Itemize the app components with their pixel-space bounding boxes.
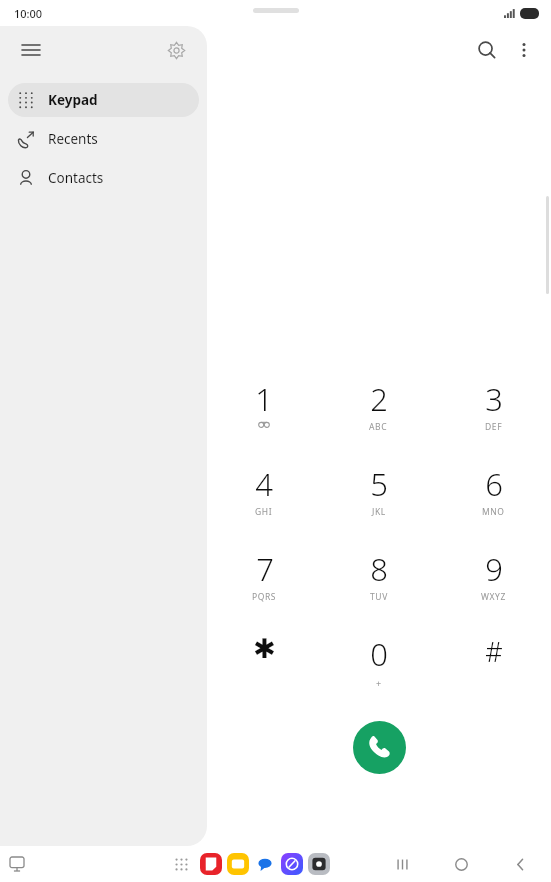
staticText: 9 — [485, 548, 503, 590]
button[interactable]: Apps — [168, 851, 194, 877]
staticText: 3 — [485, 378, 503, 420]
button[interactable]: App — [281, 853, 303, 875]
button[interactable]: Contacts — [8, 161, 199, 195]
staticText: Keypad — [48, 91, 98, 109]
staticText: JKL — [372, 506, 386, 518]
button[interactable]: More options — [507, 33, 541, 67]
staticText: 8 — [370, 548, 388, 590]
button[interactable]: App — [254, 853, 276, 875]
staticText: GHI — [255, 506, 273, 518]
button[interactable]: ✱ — [207, 633, 321, 718]
staticText: PQRS — [252, 591, 277, 603]
button[interactable]: App — [308, 853, 330, 875]
button[interactable]: 7 — [207, 548, 321, 633]
button[interactable]: App — [227, 853, 249, 875]
button[interactable]: Home — [444, 847, 478, 881]
staticText: ✱ — [253, 633, 276, 664]
staticText: 0 — [370, 633, 388, 675]
staticText: 7 — [256, 548, 274, 590]
button[interactable]: 0 — [321, 633, 436, 718]
staticText: 4 — [255, 463, 273, 505]
staticText: + — [376, 677, 382, 689]
button[interactable]: 5 — [321, 463, 436, 548]
button[interactable]: 9 — [436, 548, 551, 633]
button[interactable]: Keypad — [8, 83, 199, 117]
button[interactable]: Call — [353, 721, 406, 774]
staticText: # — [485, 633, 503, 670]
button[interactable]: Recent apps — [385, 847, 419, 881]
button[interactable]: App — [200, 853, 222, 875]
button[interactable]: 3 — [436, 378, 551, 463]
staticText: Contacts — [48, 169, 104, 187]
button[interactable]: Back — [503, 847, 537, 881]
button[interactable]: Display — [4, 851, 30, 877]
button[interactable]: Settings — [159, 33, 193, 67]
button[interactable]: 4 — [207, 463, 321, 548]
button[interactable]: Recents — [8, 122, 199, 156]
staticText: Recents — [48, 130, 98, 148]
button[interactable]: # — [436, 633, 551, 718]
button[interactable]: 6 — [436, 463, 551, 548]
button[interactable]: Menu — [14, 33, 48, 67]
staticText: WXYZ — [481, 591, 506, 603]
button[interactable]: 8 — [321, 548, 436, 633]
staticText: 10:00 — [14, 6, 43, 21]
staticText: ABC — [369, 421, 388, 433]
staticText: 6 — [485, 463, 503, 505]
staticText: 1 — [255, 378, 273, 420]
staticText: MNO — [482, 506, 505, 518]
button[interactable]: 1 — [207, 378, 321, 463]
staticText: TUV — [370, 591, 388, 603]
button[interactable]: 2 — [321, 378, 436, 463]
button[interactable]: Search — [467, 30, 507, 70]
staticText: DEF — [485, 421, 503, 433]
staticText: 5 — [370, 463, 388, 505]
staticText: 2 — [370, 378, 388, 420]
